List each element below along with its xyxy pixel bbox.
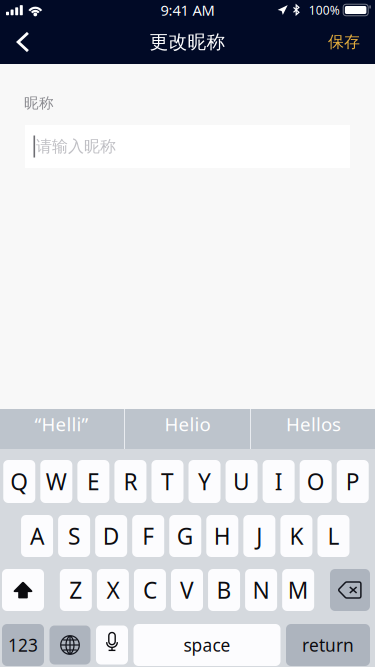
staticText: X	[106, 575, 119, 605]
button[interactable]: P	[337, 460, 369, 503]
button[interactable]: Helio	[125, 409, 250, 449]
staticText: Hellos	[286, 412, 341, 436]
button[interactable]: R	[114, 460, 146, 503]
staticText: 100%	[309, 2, 340, 18]
button[interactable]: C	[134, 569, 166, 611]
staticText: “Helli”	[34, 412, 88, 436]
staticText: E	[87, 466, 100, 496]
button[interactable]: Q	[3, 460, 35, 503]
button[interactable]: O	[300, 460, 332, 503]
staticText: 123	[8, 633, 38, 656]
button[interactable]: E	[77, 460, 109, 503]
button[interactable]: B	[208, 569, 240, 611]
staticText: M	[288, 575, 309, 605]
button[interactable]: W	[40, 460, 72, 503]
button[interactable]: U	[226, 460, 258, 503]
button[interactable]: Shift	[2, 569, 44, 611]
button[interactable]: M	[282, 569, 314, 611]
staticText: G	[177, 521, 194, 551]
button[interactable]: H	[206, 515, 238, 557]
staticText: N	[253, 575, 270, 605]
button[interactable]: G	[169, 515, 201, 557]
staticText: O	[307, 466, 325, 496]
button[interactable]: N	[245, 569, 277, 611]
staticText: 昵称	[24, 94, 54, 112]
button[interactable]: return	[286, 624, 370, 666]
button[interactable]: Hellos	[251, 409, 375, 449]
staticText: U	[233, 466, 250, 496]
staticText: H	[214, 521, 231, 551]
staticText: 9:41 AM	[160, 0, 214, 20]
staticText: A	[30, 521, 44, 551]
button[interactable]: L	[317, 515, 349, 557]
staticText: L	[327, 521, 339, 551]
staticText: D	[103, 521, 120, 551]
button[interactable]: “Helli”	[0, 409, 124, 449]
staticText: I	[275, 466, 283, 496]
staticText: Helio	[164, 412, 210, 436]
staticText: T	[161, 466, 174, 496]
button[interactable]: Z	[60, 569, 92, 611]
staticText: 更改昵称	[149, 30, 225, 53]
button[interactable]: F	[132, 515, 164, 557]
staticText: C	[143, 575, 157, 605]
button[interactable]: X	[97, 569, 129, 611]
staticText: P	[346, 466, 360, 496]
button[interactable]: V	[171, 569, 203, 611]
staticText: 保存	[328, 32, 360, 52]
staticText: K	[289, 521, 303, 551]
button[interactable]: Back	[3, 20, 43, 64]
staticText: Q	[10, 466, 28, 496]
button[interactable]: Y	[188, 460, 220, 503]
button[interactable]: space	[133, 624, 280, 666]
staticText: J	[256, 521, 262, 551]
button[interactable]: S	[58, 515, 90, 557]
button[interactable]: A	[21, 515, 53, 557]
staticText: return	[302, 633, 354, 656]
staticText: B	[216, 575, 231, 605]
staticText: 请输入昵称	[36, 137, 116, 156]
staticText: Z	[69, 575, 82, 605]
button[interactable]: K	[280, 515, 312, 557]
staticText: space	[183, 633, 230, 656]
button[interactable]: T	[151, 460, 183, 503]
staticText: W	[46, 466, 67, 496]
staticText: R	[123, 466, 137, 496]
button[interactable]: Dictate	[96, 625, 128, 664]
staticText: S	[68, 521, 80, 551]
button[interactable]: Switch keyboard	[49, 625, 90, 664]
button[interactable]: J	[243, 515, 275, 557]
staticText: F	[142, 521, 154, 551]
staticText: Y	[198, 466, 211, 496]
button[interactable]: 保存	[322, 20, 366, 64]
button[interactable]: 123	[2, 624, 44, 666]
button[interactable]: I	[263, 460, 295, 503]
button[interactable]: Delete	[330, 569, 370, 611]
staticText: V	[180, 575, 194, 605]
button[interactable]: D	[95, 515, 127, 557]
